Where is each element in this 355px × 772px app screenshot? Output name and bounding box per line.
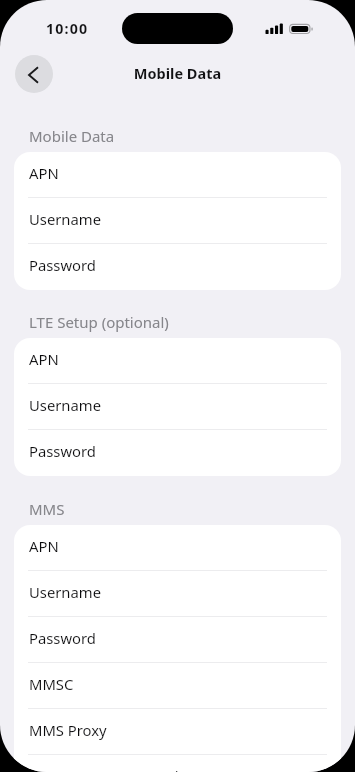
staticText: Password xyxy=(29,255,96,275)
staticText: 10:00 xyxy=(46,19,89,38)
staticText: MMS Max Message Size xyxy=(29,766,194,772)
staticText: MMS xyxy=(29,499,65,519)
button[interactable]: Password xyxy=(14,430,341,476)
staticText: LTE Setup (optional) xyxy=(29,312,169,332)
button[interactable]: Username xyxy=(14,384,341,430)
button[interactable]: APN xyxy=(14,525,341,571)
staticText: APN xyxy=(29,349,59,369)
button[interactable]: Back xyxy=(15,55,53,93)
staticText: APN xyxy=(29,536,59,556)
staticText: Username xyxy=(29,395,101,415)
staticText: APN xyxy=(29,163,59,183)
staticText: Username xyxy=(29,582,101,602)
staticText: Username xyxy=(29,209,101,229)
staticText: Password xyxy=(29,441,96,461)
staticText: Mobile Data xyxy=(29,126,115,146)
button[interactable]: Username xyxy=(14,198,341,244)
button[interactable]: MMS Proxy xyxy=(14,709,341,755)
button[interactable]: APN xyxy=(14,152,341,198)
staticText: MMSC xyxy=(29,674,74,694)
button[interactable]: Username xyxy=(14,571,341,617)
button[interactable]: Password xyxy=(14,617,341,663)
staticText: Password xyxy=(29,628,96,648)
button[interactable]: MMSC xyxy=(14,663,341,709)
button[interactable]: Password xyxy=(14,244,341,290)
button[interactable]: APN xyxy=(14,338,341,384)
button[interactable]: MMS Max Message Size xyxy=(14,755,341,772)
staticText: MMS Proxy xyxy=(29,720,107,740)
staticText: Mobile Data xyxy=(0,63,355,83)
